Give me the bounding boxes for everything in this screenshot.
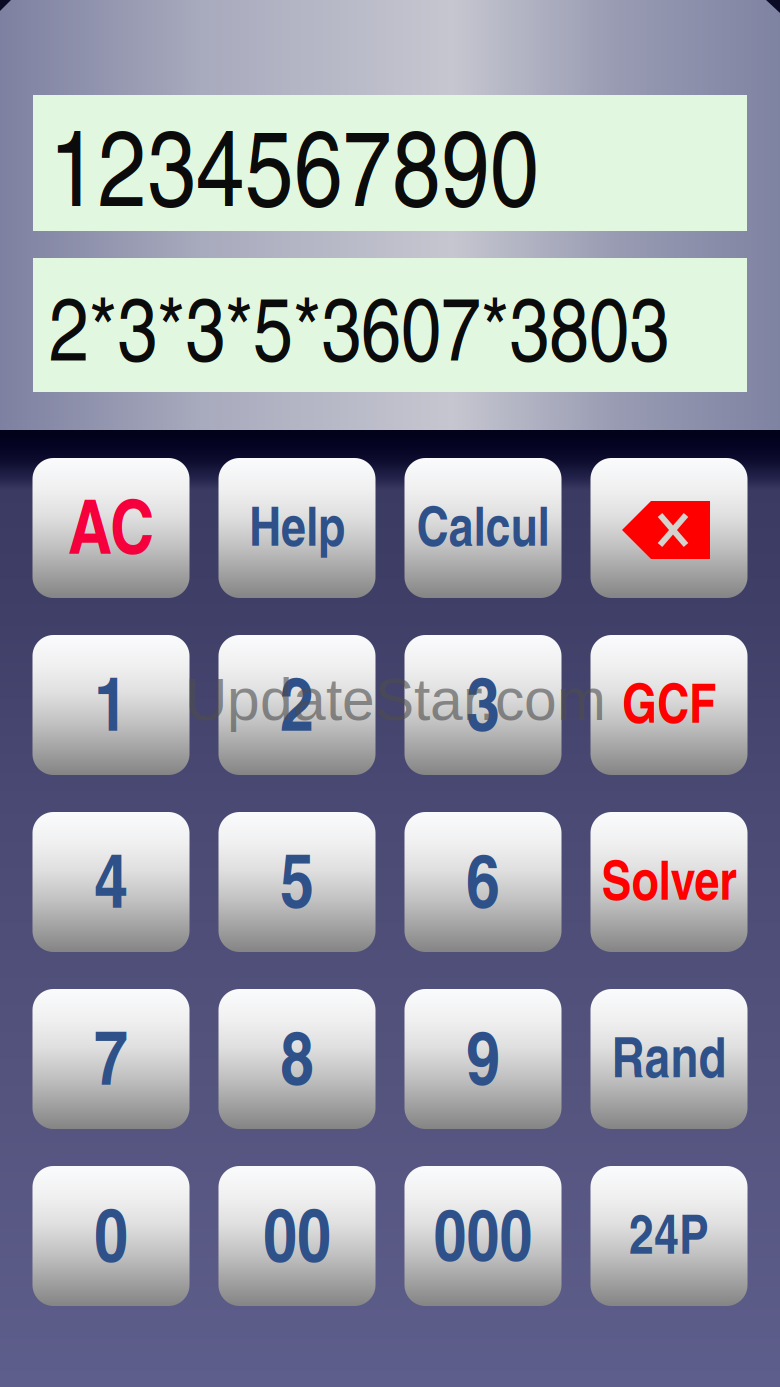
staticText: UpdateStar.com xyxy=(185,667,606,732)
button[interactable]: 5 xyxy=(218,812,375,952)
button[interactable]: Help xyxy=(218,458,375,598)
staticText: 0 xyxy=(94,1179,128,1285)
staticText: GCF xyxy=(622,662,716,740)
staticText: 000 xyxy=(433,1181,532,1283)
staticText: Calcul xyxy=(416,485,549,563)
button[interactable]: 0 xyxy=(32,1166,189,1306)
button[interactable]: Calcul xyxy=(404,458,561,598)
button[interactable]: 24P xyxy=(590,1166,747,1306)
staticText: 8 xyxy=(280,1002,314,1108)
button[interactable]: 6 xyxy=(404,812,561,952)
staticText: AC xyxy=(68,471,154,577)
staticText: 3 xyxy=(466,648,500,754)
staticText: 2*3*3*5*3607*3803 xyxy=(49,265,669,385)
staticText: Solver xyxy=(601,839,736,917)
button[interactable]: 4 xyxy=(32,812,189,952)
button[interactable]: 000 xyxy=(404,1166,561,1306)
button[interactable]: AC xyxy=(32,458,189,598)
staticText: 5 xyxy=(280,825,314,931)
staticText: 6 xyxy=(466,825,500,931)
staticText: 1234567890 xyxy=(49,90,539,236)
button[interactable]: Delete xyxy=(590,458,747,598)
staticText: 00 xyxy=(263,1179,331,1285)
staticText: 9 xyxy=(466,1002,500,1108)
staticText: 1 xyxy=(94,648,128,754)
button[interactable]: 2 xyxy=(218,635,375,775)
staticText: 7 xyxy=(94,1002,128,1108)
button[interactable]: 00 xyxy=(218,1166,375,1306)
button[interactable]: 1 xyxy=(32,635,189,775)
button[interactable]: Solver xyxy=(590,812,747,952)
staticText: Rand xyxy=(611,1015,726,1095)
button[interactable]: 7 xyxy=(32,989,189,1129)
button[interactable]: 8 xyxy=(218,989,375,1129)
staticText: 24P xyxy=(629,1193,709,1271)
button[interactable]: 3 xyxy=(404,635,561,775)
button[interactable]: 9 xyxy=(404,989,561,1129)
button[interactable]: Rand xyxy=(590,989,747,1129)
staticText: Help xyxy=(249,485,345,563)
button[interactable]: GCF xyxy=(590,635,747,775)
staticText: 2 xyxy=(280,648,314,754)
staticText: 4 xyxy=(94,825,128,931)
